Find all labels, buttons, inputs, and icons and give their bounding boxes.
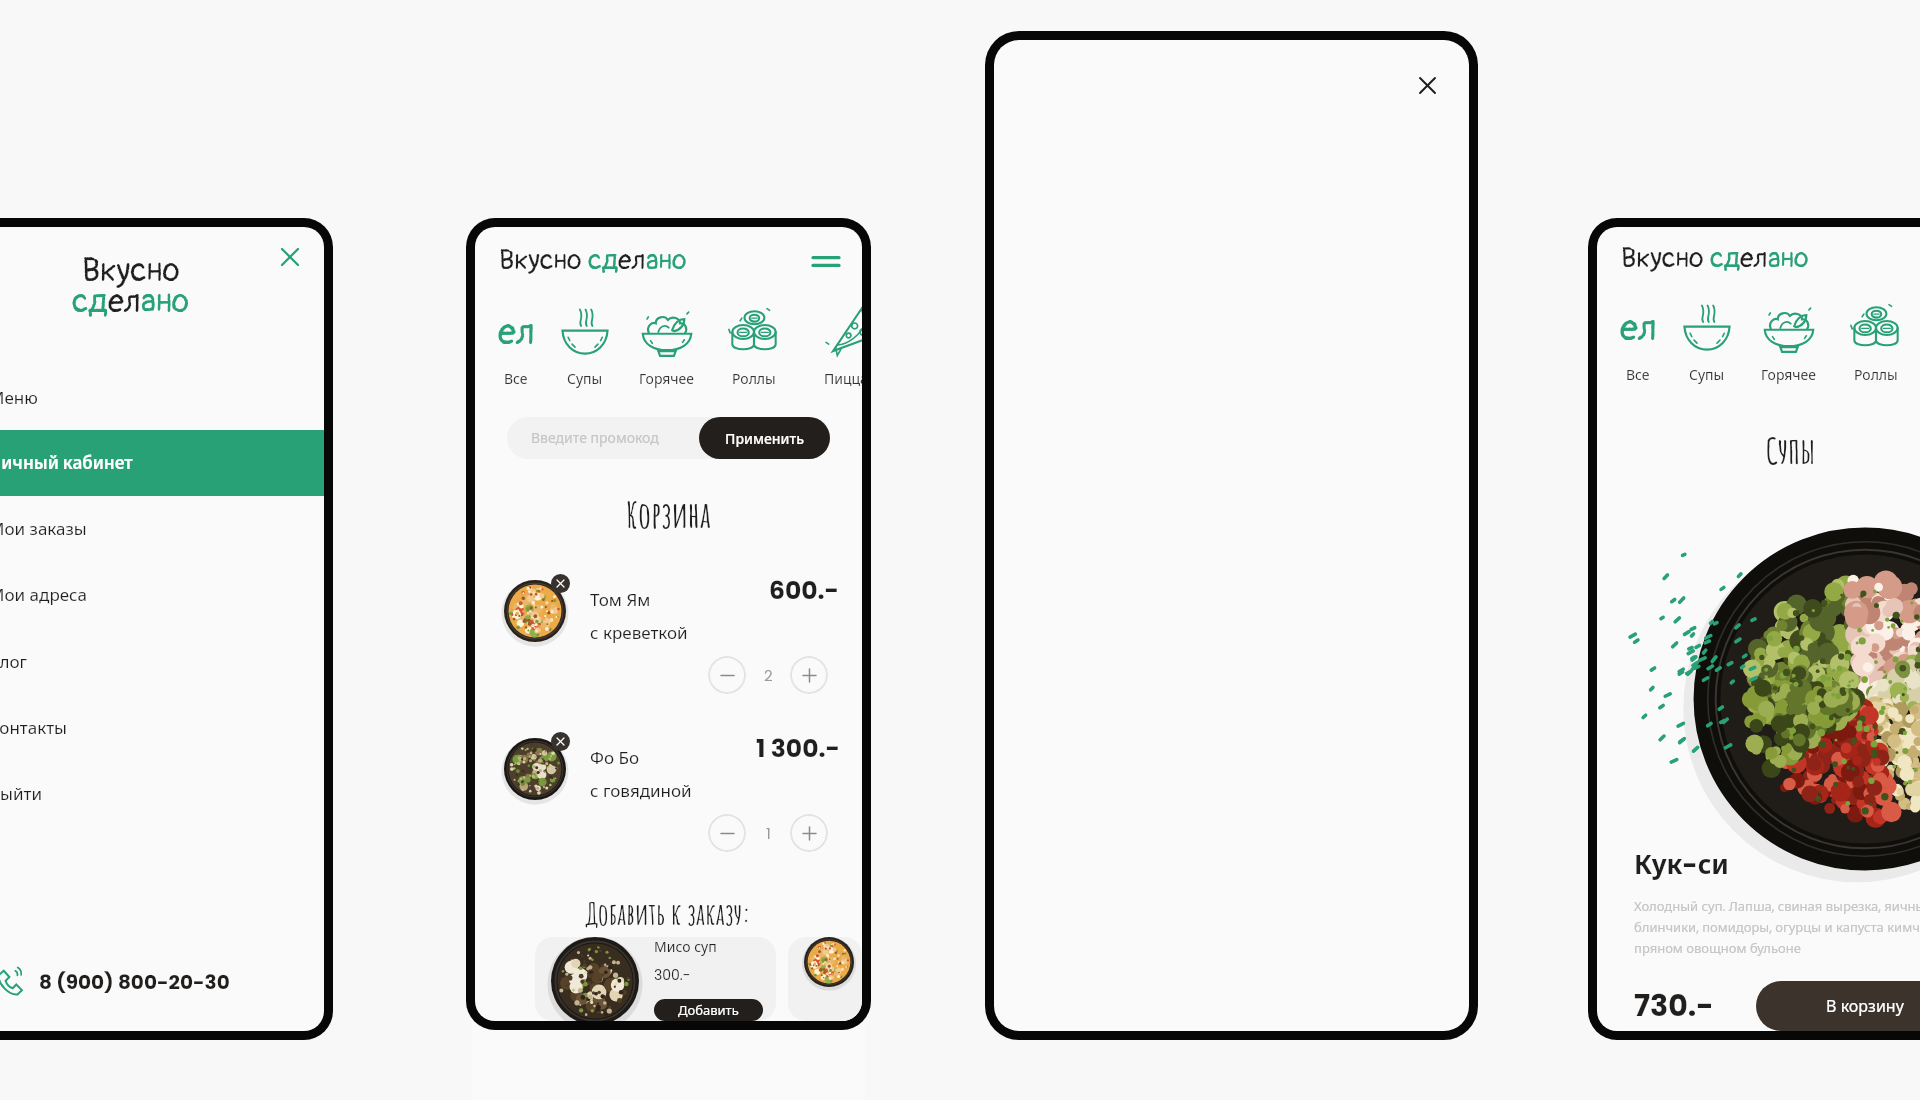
staticText: Вкусно (499, 244, 588, 278)
staticText: 300.- (654, 965, 691, 985)
staticText: Личный кабинет (0, 451, 133, 475)
button[interactable]: Increase quantity (790, 814, 828, 852)
staticText: Блог (0, 650, 27, 673)
button[interactable]: Горячее (1744, 301, 1834, 384)
button[interactable]: Контакты (0, 694, 324, 760)
button[interactable]: Remove Том Ям (551, 574, 570, 593)
button[interactable]: Мои адреса (0, 562, 324, 628)
staticText: Выйти (0, 782, 42, 805)
button[interactable]: Пицца (801, 305, 862, 388)
staticText: Добавить к заказу: (475, 895, 862, 933)
button[interactable]: Decrease quantity (708, 814, 746, 852)
button[interactable]: Введите промокод (507, 417, 785, 459)
button[interactable]: ел (1597, 301, 1683, 384)
button[interactable]: Супы (540, 305, 630, 388)
button[interactable]: Decrease quantity (708, 656, 746, 694)
button[interactable]: Том Ям (788, 937, 862, 1021)
staticText: сд (72, 282, 108, 322)
staticText: Вкусно (82, 251, 180, 291)
button[interactable]: Мисо суп (535, 937, 776, 1021)
button[interactable]: Close menu (274, 241, 306, 273)
staticText: с говядиной (590, 779, 692, 803)
staticText: Холодный суп. Лапша, свиная вырезка, яич… (1634, 897, 1920, 957)
staticText: Корзина (475, 491, 862, 536)
staticText: ел (1620, 306, 1657, 351)
staticText: 8 (900) 800-20-30 (39, 968, 230, 996)
staticText: Супы (1597, 427, 1920, 472)
staticText: 600.- (769, 573, 840, 608)
staticText: Мои адреса (0, 583, 87, 607)
staticText: 2 (764, 665, 773, 686)
staticText: 1 300.- (756, 731, 840, 766)
staticText: Фо Бо (590, 746, 640, 770)
staticText: Супы (1689, 365, 1725, 384)
button[interactable]: Меню (0, 364, 324, 430)
staticText: Роллы (1854, 365, 1898, 384)
button[interactable]: Применить (699, 417, 830, 459)
staticText: ел (618, 244, 646, 278)
staticText: Применить (725, 429, 805, 448)
button[interactable]: Супы (1662, 301, 1752, 384)
staticText: Супы (567, 369, 603, 388)
staticText: ано (646, 244, 687, 278)
button[interactable]: Мои заказы (0, 496, 324, 562)
staticText: сд (1710, 242, 1740, 276)
staticText: Контакты (0, 716, 68, 739)
staticText: Все (1626, 365, 1650, 384)
button[interactable]: Добавить (654, 999, 763, 1021)
staticText: ел (1740, 242, 1768, 276)
staticText: ано (141, 282, 190, 322)
button[interactable]: В корзину (1756, 981, 1920, 1031)
button[interactable]: Горячее (622, 305, 712, 388)
staticText: Добавить (678, 1001, 739, 1019)
button[interactable]: 8 (900) 800-20-30 (0, 967, 324, 1031)
staticText: Все (504, 369, 528, 388)
staticText: ано (1768, 242, 1809, 276)
staticText: Вкусно (1621, 242, 1710, 276)
staticText: ел (498, 310, 535, 355)
staticText: Том Ям (590, 588, 651, 612)
staticText: Роллы (732, 369, 776, 388)
staticText: 730.- (1634, 985, 1714, 1027)
staticText: Мои заказы (0, 517, 87, 541)
button[interactable]: Remove Фо Бо (551, 732, 570, 751)
staticText: Меню (0, 386, 38, 409)
staticText: Горячее (639, 369, 695, 388)
button[interactable]: Блог (0, 628, 324, 694)
button[interactable]: Роллы (709, 305, 799, 388)
staticText: 1 (766, 823, 771, 844)
button[interactable]: Close (1409, 67, 1445, 103)
button[interactable]: Open menu (807, 242, 845, 280)
button[interactable]: Increase quantity (790, 656, 828, 694)
staticText: Введите промокод (531, 428, 659, 448)
staticText: с креветкой (590, 621, 688, 645)
button[interactable]: ел (475, 305, 561, 388)
staticText: Кук-си (1634, 846, 1729, 883)
button[interactable]: Выйти (0, 760, 324, 826)
staticText: Пицца (824, 369, 862, 388)
staticText: Горячее (1761, 365, 1817, 384)
staticText: Мисо суп (654, 937, 717, 957)
button[interactable]: Роллы (1831, 301, 1920, 384)
button[interactable]: Личный кабинет (0, 430, 324, 496)
staticText: сд (588, 244, 618, 278)
staticText: В корзину (1826, 995, 1904, 1018)
staticText: ел (108, 282, 141, 322)
